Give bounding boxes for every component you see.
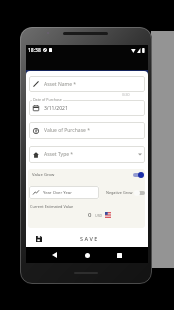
button[interactable]: Year Over Year [29, 186, 99, 199]
staticText: USD [95, 213, 103, 218]
staticText: 0/40 [122, 92, 130, 97]
staticText: Asset Name * [44, 81, 77, 88]
staticText: Asset Type * [44, 151, 74, 158]
button[interactable]: Recent apps [111, 247, 127, 263]
button[interactable]: Asset Name * [29, 76, 145, 92]
staticText: 0 [88, 211, 92, 219]
staticText: S A V E [80, 235, 98, 242]
staticText: Date of Purchase [33, 97, 62, 102]
staticText: Year Over Year [43, 190, 72, 196]
button[interactable]: S A V E [26, 230, 148, 247]
button[interactable]: Asset Type * [29, 146, 145, 163]
button[interactable]: Value of Purchase * [29, 122, 145, 139]
button[interactable]: Value Grow toggle [133, 171, 144, 178]
button[interactable]: Home [79, 247, 95, 263]
staticText: 18:38 [28, 47, 41, 54]
staticText: Current Estimated Value [30, 204, 74, 209]
staticText: 3/11/2021 [44, 105, 68, 112]
staticText: Negative Grow [106, 190, 133, 195]
button[interactable]: 3/11/2021 [29, 100, 145, 116]
button[interactable]: Negative Grow toggle [134, 189, 145, 196]
button[interactable]: Back [46, 247, 62, 263]
staticText: Value Grow [32, 172, 55, 178]
staticText: Value of Purchase * [44, 127, 90, 134]
